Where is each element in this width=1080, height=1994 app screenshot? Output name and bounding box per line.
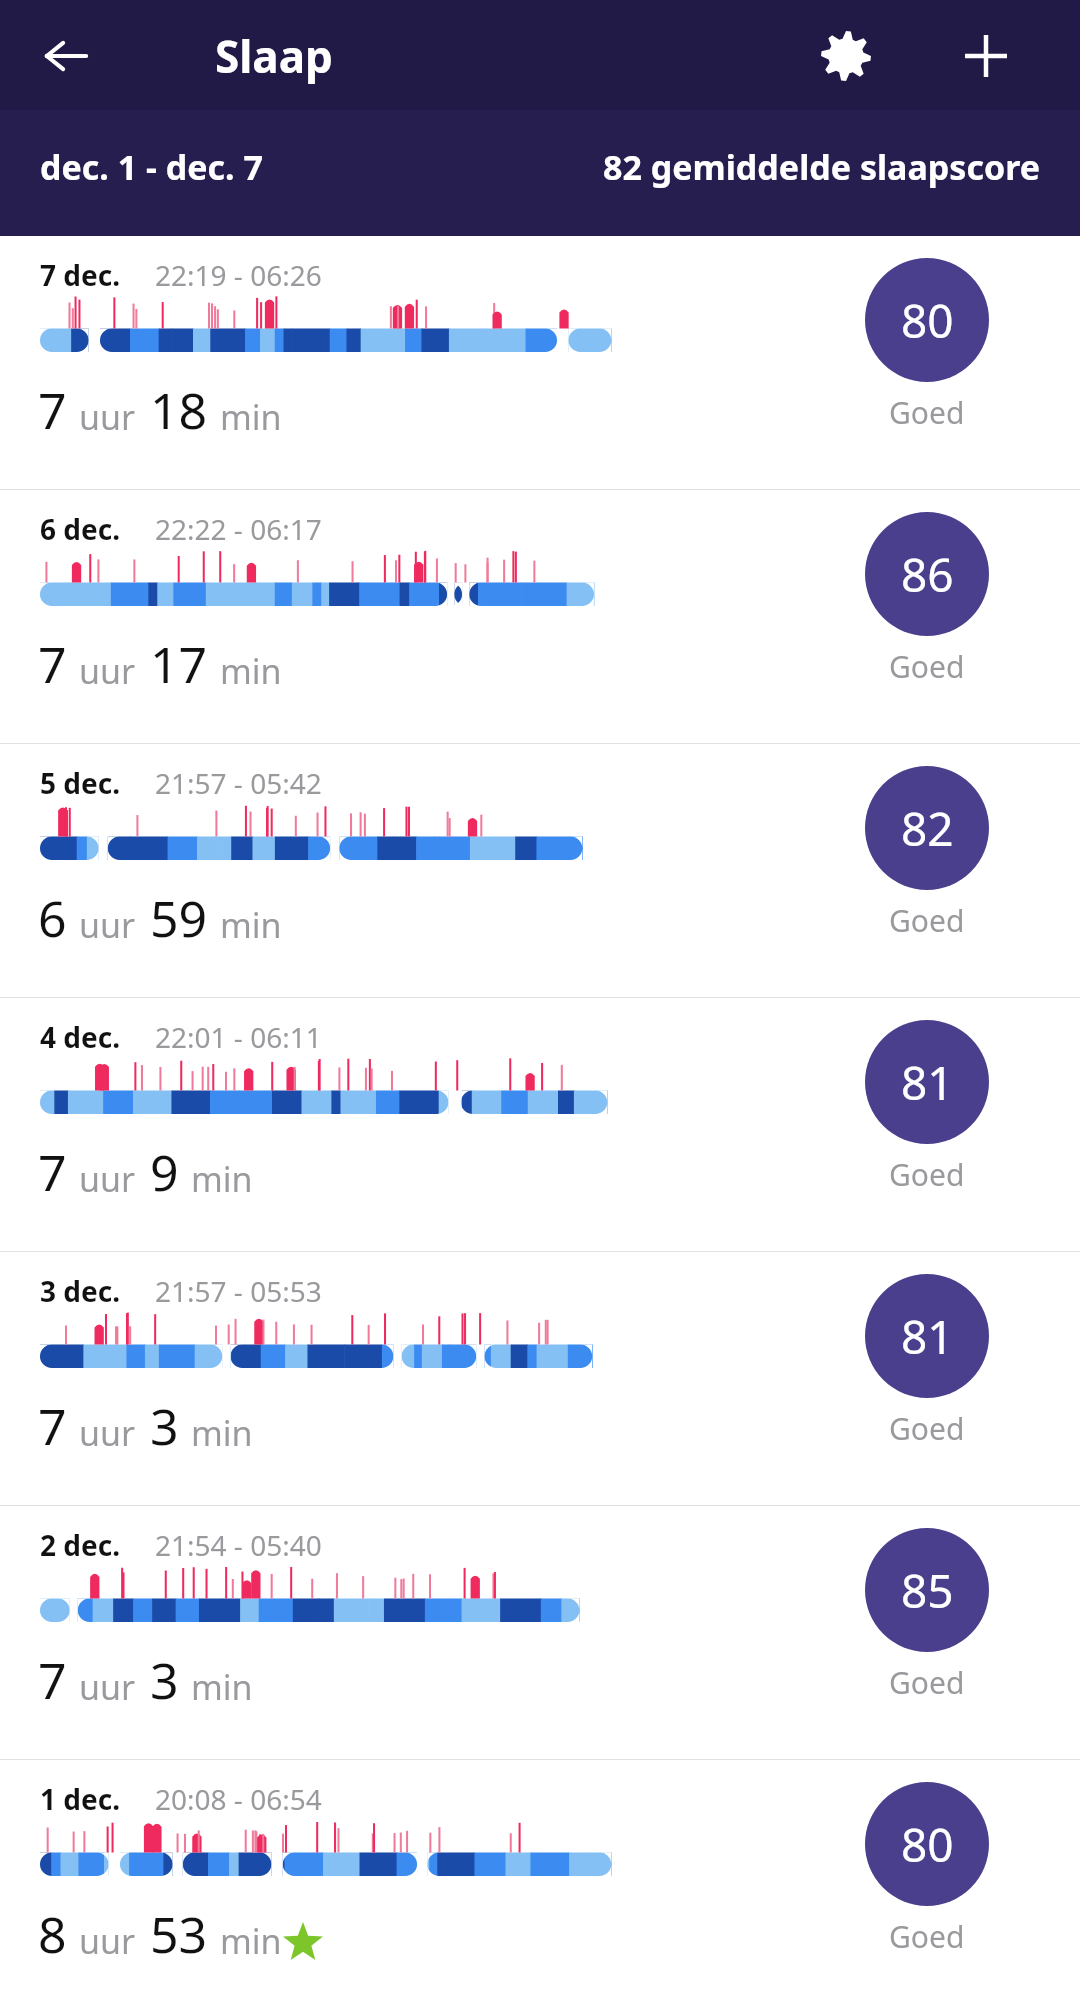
staticText: 18	[150, 376, 208, 444]
staticText: 5 dec.	[40, 764, 121, 802]
staticText: min	[191, 1156, 253, 1202]
staticText: min	[220, 648, 282, 694]
staticText: 22:01 - 06:11	[155, 1018, 322, 1056]
staticText: Slaap	[215, 26, 333, 86]
staticText: uur	[79, 1156, 136, 1202]
staticText: 80	[901, 289, 954, 352]
staticText: 22:22 - 06:17	[155, 510, 322, 548]
staticText: 17	[150, 630, 208, 698]
staticText: 53	[150, 1900, 208, 1968]
button[interactable]: 4 dec.	[0, 998, 1080, 1252]
button[interactable]: Add	[952, 22, 1020, 90]
staticText: 2 dec.	[40, 1526, 121, 1564]
staticText: 7	[38, 1646, 67, 1714]
staticText: dec. 1 - dec. 7	[40, 144, 263, 190]
staticText: 7	[38, 630, 67, 698]
button[interactable]: 6 dec.	[0, 490, 1080, 744]
staticText: 8	[38, 1900, 67, 1968]
staticText: 6 dec.	[40, 510, 121, 548]
staticText: 3 dec.	[40, 1272, 121, 1310]
staticText: Goed	[889, 1408, 965, 1449]
staticText: 3	[150, 1646, 179, 1714]
staticText: 85	[901, 1559, 954, 1622]
staticText: Goed	[889, 1154, 965, 1195]
staticText: 7	[38, 1392, 67, 1460]
staticText: min	[191, 1410, 253, 1456]
button[interactable]: 1 dec.	[0, 1760, 1080, 1994]
staticText: min	[191, 1664, 253, 1710]
button[interactable]: 5 dec.	[0, 744, 1080, 998]
staticText: 7 dec.	[40, 256, 121, 294]
button[interactable]: 3 dec.	[0, 1252, 1080, 1506]
staticText: uur	[79, 648, 136, 694]
staticText: 7	[38, 1138, 67, 1206]
staticText: 21:54 - 05:40	[155, 1526, 322, 1564]
staticText: min	[220, 902, 282, 948]
staticText: Goed	[889, 392, 965, 433]
staticText: 21:57 - 05:53	[155, 1272, 322, 1310]
button[interactable]: 7 dec.	[0, 236, 1080, 490]
staticText: 7	[38, 376, 67, 444]
staticText: 1 dec.	[40, 1780, 121, 1818]
staticText: 20:08 - 06:54	[155, 1780, 322, 1818]
staticText: 59	[150, 884, 208, 952]
staticText: 22:19 - 06:26	[155, 256, 322, 294]
staticText: Goed	[889, 646, 965, 687]
staticText: uur	[79, 1918, 136, 1964]
button[interactable]: 2 dec.	[0, 1506, 1080, 1760]
staticText: 82 gemiddelde slaapscore	[420, 144, 1040, 190]
staticText: 80	[901, 1813, 954, 1876]
staticText: Goed	[889, 1662, 965, 1703]
button[interactable]: Settings	[812, 22, 880, 90]
staticText: 6	[38, 884, 67, 952]
staticText: 81	[901, 1305, 954, 1368]
staticText: min	[220, 1918, 282, 1964]
staticText: 4 dec.	[40, 1018, 121, 1056]
staticText: 9	[150, 1138, 179, 1206]
staticText: uur	[79, 902, 136, 948]
staticText: uur	[79, 394, 136, 440]
staticText: min	[220, 394, 282, 440]
staticText: uur	[79, 1410, 136, 1456]
staticText: 81	[901, 1051, 954, 1114]
staticText: Goed	[889, 900, 965, 941]
staticText: 82	[901, 797, 954, 860]
staticText: 21:57 - 05:42	[155, 764, 322, 802]
staticText: 3	[150, 1392, 179, 1460]
staticText: Goed	[889, 1916, 965, 1957]
staticText: 86	[901, 543, 954, 606]
staticText: uur	[79, 1664, 136, 1710]
button[interactable]: Back	[36, 26, 96, 86]
